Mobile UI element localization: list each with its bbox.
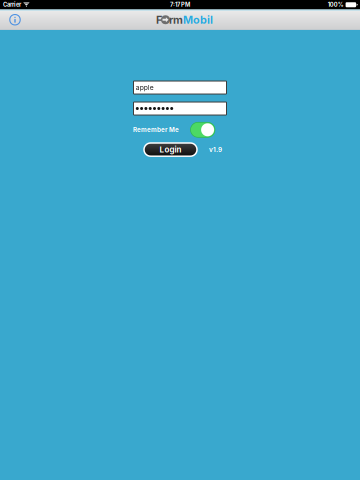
staticText: Login <box>159 145 181 154</box>
staticText: 7:17 PM <box>170 1 190 8</box>
button[interactable]: Remember Me <box>190 122 215 137</box>
button[interactable]: Password <box>133 101 227 115</box>
staticText: rm <box>169 13 183 26</box>
staticText: Mobil <box>183 13 213 26</box>
staticText: Carrier <box>3 1 21 8</box>
staticText: Remember Me <box>133 126 179 134</box>
staticText: apple <box>136 83 154 92</box>
staticText: v1.9 <box>209 146 222 153</box>
button[interactable]: Info <box>2 9 28 30</box>
button[interactable]: Login <box>144 143 197 156</box>
staticText: F <box>156 13 162 26</box>
button[interactable]: Username <box>133 80 227 94</box>
staticText: 100% <box>328 1 344 8</box>
